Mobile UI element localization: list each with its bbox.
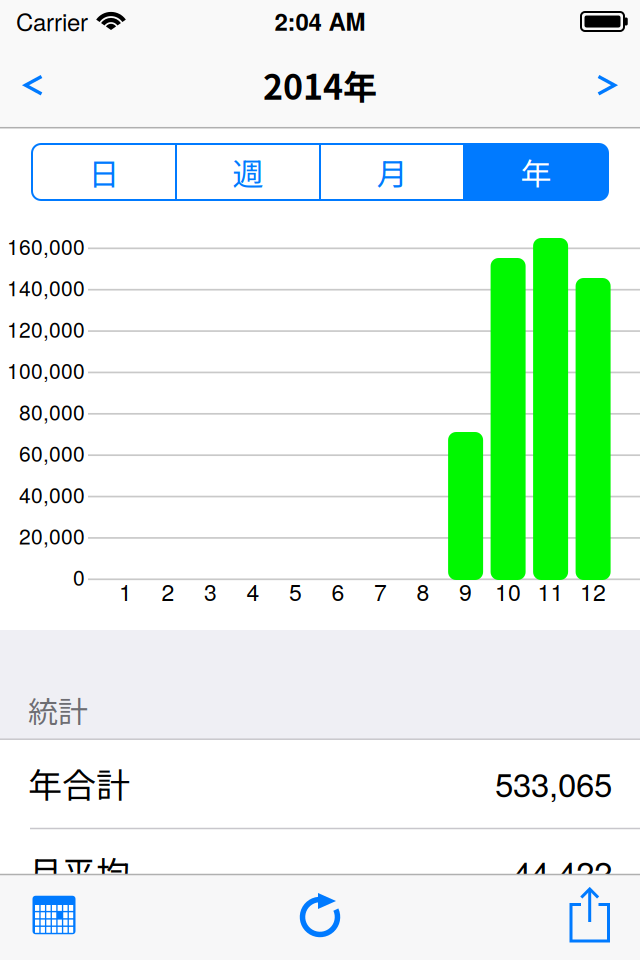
staticText: 統計 (28, 688, 88, 732)
staticText: Carrier (16, 4, 88, 38)
staticText: 2:04 AM (274, 4, 365, 38)
staticText: 20,000 (19, 520, 85, 550)
staticText: 年合計 (28, 758, 130, 808)
staticText: 4 (247, 574, 260, 607)
button[interactable] (545, 875, 633, 955)
staticText: 100,000 (7, 355, 85, 385)
button[interactable]: 年 (465, 144, 607, 200)
staticText: 2 (162, 574, 175, 607)
staticText: 44,422 (513, 848, 612, 895)
staticText: 3 (204, 574, 217, 607)
staticText: 12 (580, 574, 606, 607)
button[interactable]: 週 (177, 144, 319, 200)
staticText: 日 (88, 150, 119, 194)
button[interactable]: 月 (321, 144, 463, 200)
staticText: 2014年 (263, 60, 377, 110)
staticText: 120,000 (7, 313, 85, 344)
button[interactable] (576, 55, 640, 115)
staticText: 160,000 (7, 231, 85, 261)
staticText: 年 (520, 150, 551, 194)
staticText: 1 (119, 574, 132, 607)
staticText: 7 (374, 574, 387, 607)
staticText: 6 (332, 574, 345, 607)
button[interactable]: 日 (33, 144, 175, 200)
staticText: 週 (232, 150, 263, 194)
button[interactable] (276, 875, 364, 955)
staticText: 40,000 (19, 479, 85, 509)
staticText: 533,065 (495, 759, 612, 807)
staticText: 0 (73, 562, 85, 592)
staticText: 8 (417, 574, 430, 607)
staticText: 9 (459, 574, 472, 607)
button[interactable] (0, 55, 64, 115)
staticText: 80,000 (19, 396, 85, 426)
staticText: 140,000 (7, 272, 85, 302)
staticText: 11 (538, 574, 564, 607)
staticText: 10 (495, 574, 521, 607)
staticText: 60,000 (19, 438, 85, 468)
staticText: 5 (289, 574, 302, 607)
button[interactable] (10, 875, 98, 955)
staticText: 月 (376, 150, 407, 194)
staticText: 月平均 (28, 847, 130, 896)
